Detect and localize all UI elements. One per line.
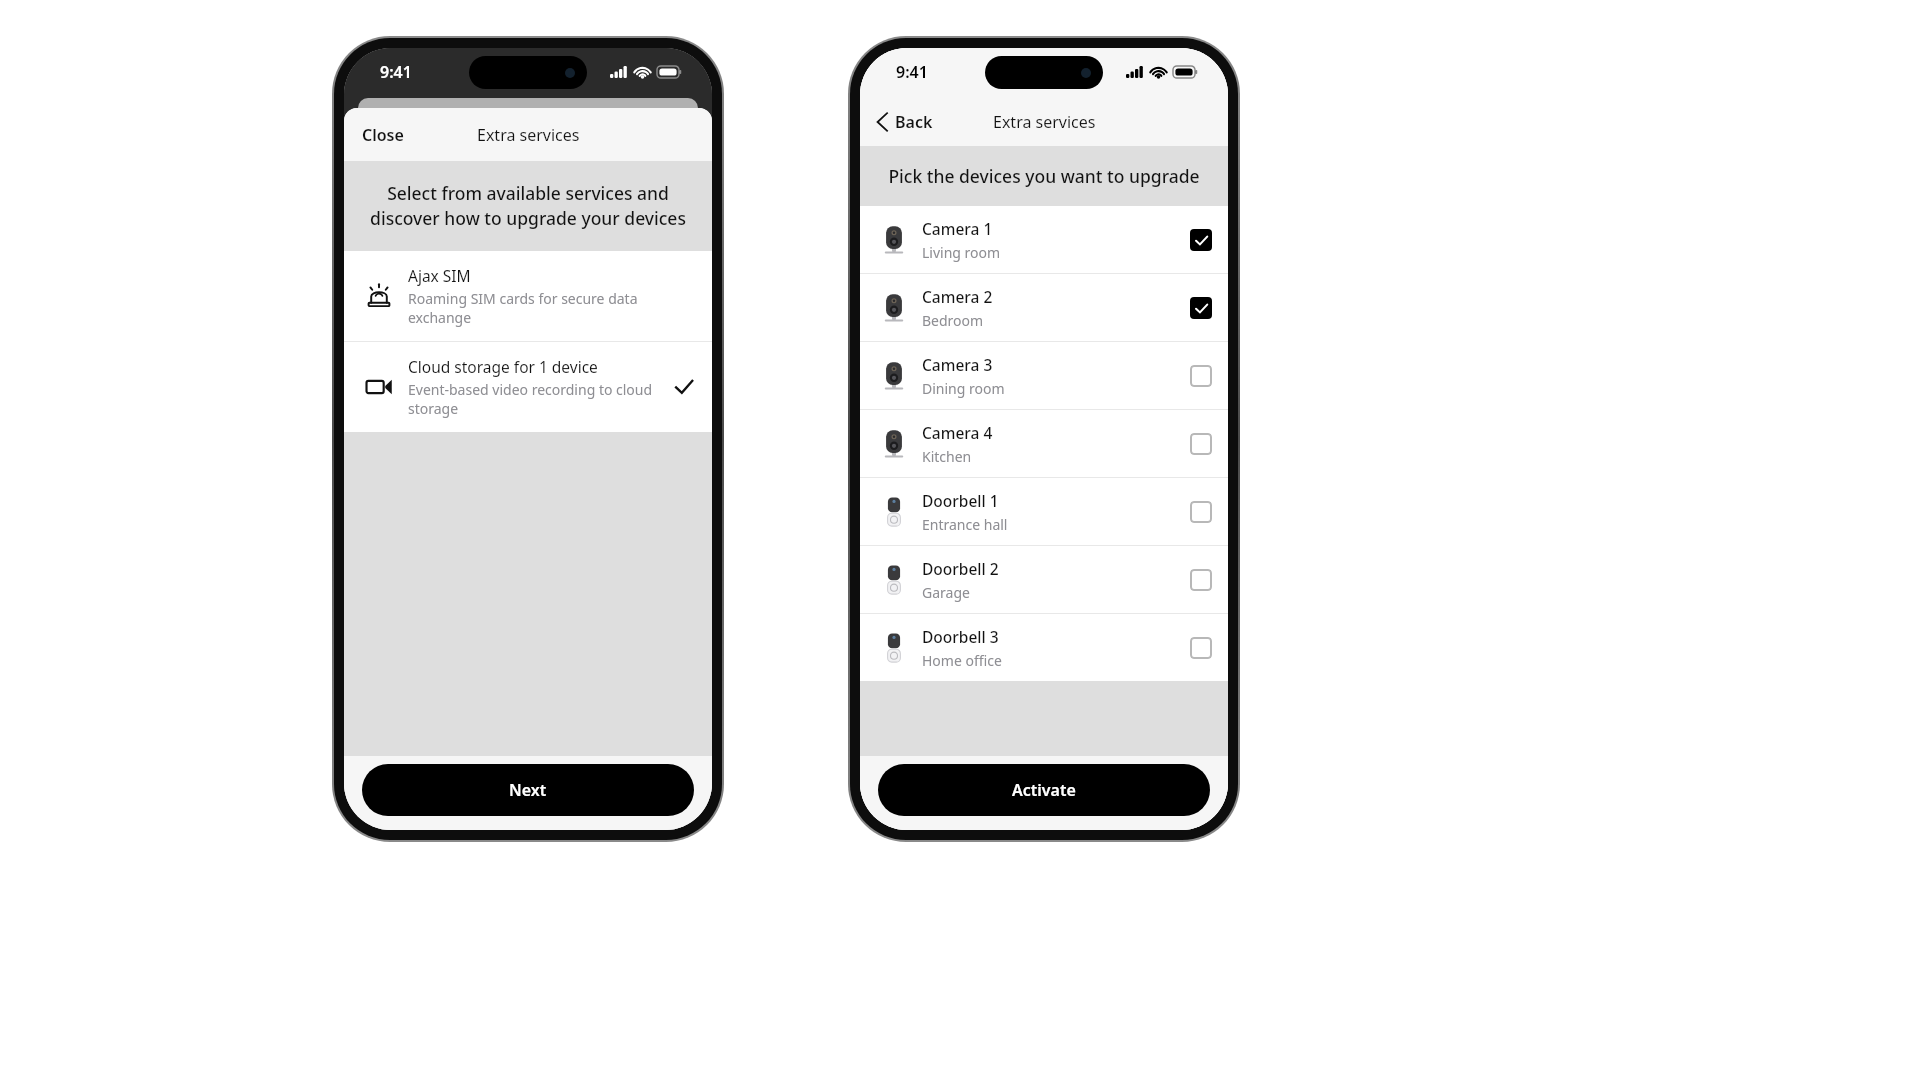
staticText: Garage [922,583,970,602]
button[interactable]: Camera 4 [860,410,1228,477]
staticText: Cloud storage for 1 device [408,356,598,377]
staticText: Event-based video recording to cloud sto… [408,380,664,418]
staticText: Doorbell 3 [922,626,999,647]
button[interactable]: Doorbell 1 [860,478,1228,545]
staticText: Ajax SIM [408,265,471,286]
staticText: Activate [1012,779,1076,801]
staticText: Select from available services and disco… [370,181,686,231]
staticText: Living room [922,243,1001,262]
staticText: 9:41 [380,61,412,83]
button[interactable]: Doorbell 3 [860,614,1228,681]
staticText: Dining room [922,379,1005,398]
staticText: Roaming SIM cards for secure data exchan… [408,289,664,327]
button[interactable]: Doorbell 2 [860,546,1228,613]
staticText: Camera 1 [922,218,993,239]
staticText: Camera 2 [922,286,993,307]
staticText: Extra services [477,124,580,146]
button[interactable]: Cloud storage for 1 device [344,342,712,432]
staticText: Back [895,111,933,133]
button[interactable]: Activate [878,764,1210,816]
staticText: Home office [922,651,1002,670]
staticText: Camera 4 [922,422,993,443]
button[interactable]: Close [352,118,414,152]
staticText: Pick the devices you want to upgrade [888,164,1200,188]
staticText: Bedroom [922,311,984,330]
staticText: Camera 3 [922,354,993,375]
button[interactable]: Camera 2 [860,274,1228,341]
staticText: Extra services [993,111,1096,133]
button[interactable]: Camera 1 [860,206,1228,273]
staticText: Entrance hall [922,515,1008,534]
button[interactable]: Ajax SIM [344,251,712,341]
button[interactable]: Back [870,107,939,137]
staticText: Close [362,124,404,146]
staticText: Next [509,779,547,801]
staticText: Doorbell 2 [922,558,999,579]
button[interactable]: Next [362,764,694,816]
staticText: 9:41 [896,61,928,83]
staticText: Kitchen [922,447,972,466]
staticText: Doorbell 1 [922,490,999,511]
button[interactable]: Camera 3 [860,342,1228,409]
